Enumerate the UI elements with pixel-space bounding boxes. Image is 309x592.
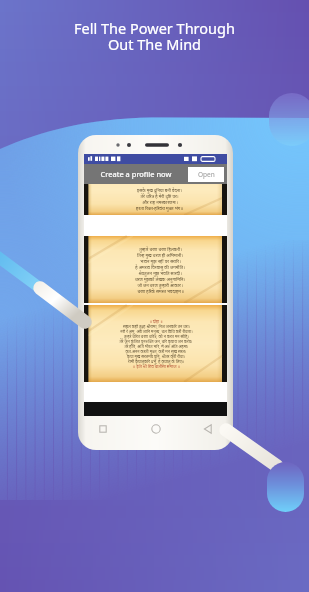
staticText: और राह नमस्कारणमः।: [142, 199, 178, 205]
staticText: Fell The Power Through Out The Mind: [74, 18, 235, 54]
staticText: तेरे चरित्र है मेरी दृष्टि पर।: [140, 193, 179, 199]
staticText: तिन्ह मुख चरण ही अभिमानी।: [137, 252, 183, 258]
staticText: सबल कहौं तुझ्ह श्रीरामा, निज जनकरि तन धर…: [123, 324, 190, 329]
staticText: तुम्हरे चरित चरण चरित्र, को न करत मन सोह…: [124, 334, 189, 339]
button[interactable]: इसके मुख दुनिया बनी वेदना।: [84, 165, 227, 215]
staticText: तेरे होरि, अति भीरत भरि, मैं अरु अंति अह…: [124, 344, 189, 349]
staticText: श्रेयतुलन मुझ भवति सारदी।: [138, 270, 182, 276]
staticText: इसके मुख दुनिया बनी वेदना।: [137, 187, 182, 193]
button[interactable]: तुम्हारे चरण चरण हिलकरी।: [84, 236, 227, 303]
staticText: तेरे जन कुंजित पुनरुक्ति जन, चरि कृपाय ज…: [119, 339, 193, 344]
staticText: ॥ इति श्री शिव चालीसा समाप्त ॥: [133, 364, 180, 369]
staticText: रामौ कृपालुकरि प्रभु, हे कृपालु के लिए॥: [128, 359, 184, 364]
staticText: चरण मुझको लेखक अनुगामिनि।: [135, 276, 185, 282]
button[interactable]: Create a profile now: [84, 164, 227, 184]
staticText: भावन मुझ नहीं पर सरारि।: [140, 258, 181, 264]
staticText: कृत-अनन करती मुक्त, करौ मन सुख सरल।: [125, 349, 187, 354]
staticText: कृपा मुख सरलमय पुनि, श्रीतर करौ रीधा।: [127, 354, 185, 359]
button[interactable]: Open: [188, 167, 224, 182]
button[interactable]: Recent apps: [92, 418, 114, 440]
staticText: जो जन चरण तुम्हारी आकार।: [137, 282, 183, 288]
staticText: Open: [198, 170, 215, 179]
staticText: चरण हरिके समस्त भवदाहम॥: [137, 288, 184, 294]
staticText: हे अमरत्व विश्वासु की जगमौति।: [135, 264, 185, 270]
staticText: नरौं रे अमु, अब जानि मनुष्य, चल विधि करौ…: [120, 329, 193, 334]
staticText: Create a profile now: [84, 169, 188, 179]
button[interactable]: ॥ दोहा ॥: [84, 305, 227, 382]
button[interactable]: Back: [197, 418, 219, 440]
staticText: ॥ दोहा ॥: [149, 319, 163, 324]
button[interactable]: Home: [145, 418, 167, 440]
staticText: हरता रिक्त-हरिवंश मुक्त भंग॥: [136, 205, 183, 211]
staticText: तुम्हारे चरण चरण हिलकरी।: [139, 246, 182, 252]
